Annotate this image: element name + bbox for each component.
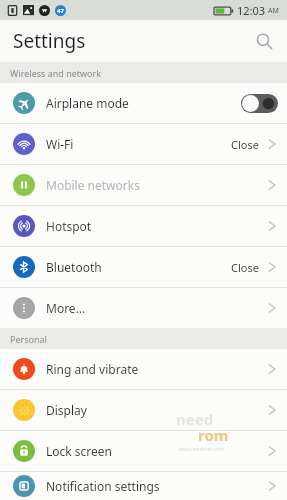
staticText: Mobile networks [46, 177, 140, 193]
button[interactable]: Airplane mode toggle [241, 94, 278, 113]
staticText: 47 [57, 7, 64, 15]
button[interactable]: Lock screen [0, 431, 287, 471]
staticText: Ring and vibrate [46, 361, 139, 377]
staticText: Personal [10, 333, 47, 345]
button[interactable]: Wi-Fi [0, 124, 287, 164]
button[interactable]: Ring and vibrate [0, 349, 287, 389]
staticText: 12:03 [237, 3, 266, 18]
staticText: AM [268, 6, 279, 16]
button[interactable]: Airplane mode [0, 83, 287, 123]
button[interactable]: Display [0, 390, 287, 430]
button[interactable]: Hotspot [0, 206, 287, 246]
staticText: Wireless and network [10, 67, 102, 79]
button[interactable]: Search [251, 28, 277, 54]
staticText: Hotspot [46, 218, 92, 234]
staticText: need [176, 409, 214, 429]
button[interactable]: More... [0, 288, 287, 328]
staticText: www.needrom.com [178, 446, 224, 453]
staticText: Display [46, 402, 87, 418]
staticText: Bluetooth [46, 259, 102, 275]
staticText: Close [231, 137, 259, 152]
staticText: Wi-Fi [46, 136, 74, 152]
staticText: More... [46, 300, 86, 316]
staticText: Close [231, 260, 259, 275]
button[interactable]: Mobile networks [0, 165, 287, 205]
staticText: Notification settings [46, 478, 160, 494]
staticText: Airplane mode [46, 95, 129, 111]
button[interactable]: Bluetooth [0, 247, 287, 287]
staticText: Settings [13, 28, 86, 54]
button[interactable]: Notification settings [0, 472, 287, 500]
staticText: Lock screen [46, 443, 113, 459]
staticText: rom [198, 425, 229, 445]
